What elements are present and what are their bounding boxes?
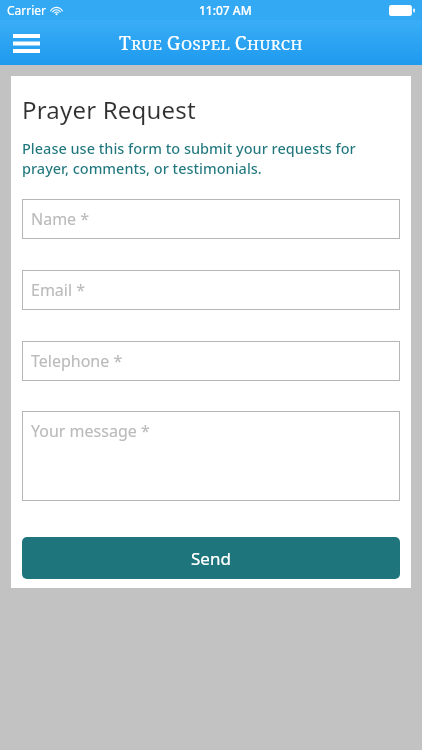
staticText: Your message *: [31, 420, 150, 442]
staticText: Carrier: [7, 2, 47, 18]
button[interactable]: Open navigation menu: [4, 21, 48, 65]
staticText: 11:07 AM: [199, 2, 252, 18]
staticText: Send: [191, 547, 231, 570]
staticText: Email *: [31, 279, 86, 301]
button[interactable]: Telephone *: [22, 341, 400, 381]
button[interactable]: Your message *: [22, 411, 400, 501]
staticText: Prayer Request: [22, 93, 196, 126]
staticText: Name *: [31, 208, 90, 230]
staticText: TRUE GOSPEL CHURCH: [119, 30, 303, 56]
button[interactable]: Send: [22, 537, 400, 579]
button[interactable]: Name *: [22, 199, 400, 239]
button[interactable]: Email *: [22, 270, 400, 310]
staticText: Telephone *: [31, 350, 123, 372]
staticText: Please use this form to submit your requ…: [22, 138, 397, 178]
